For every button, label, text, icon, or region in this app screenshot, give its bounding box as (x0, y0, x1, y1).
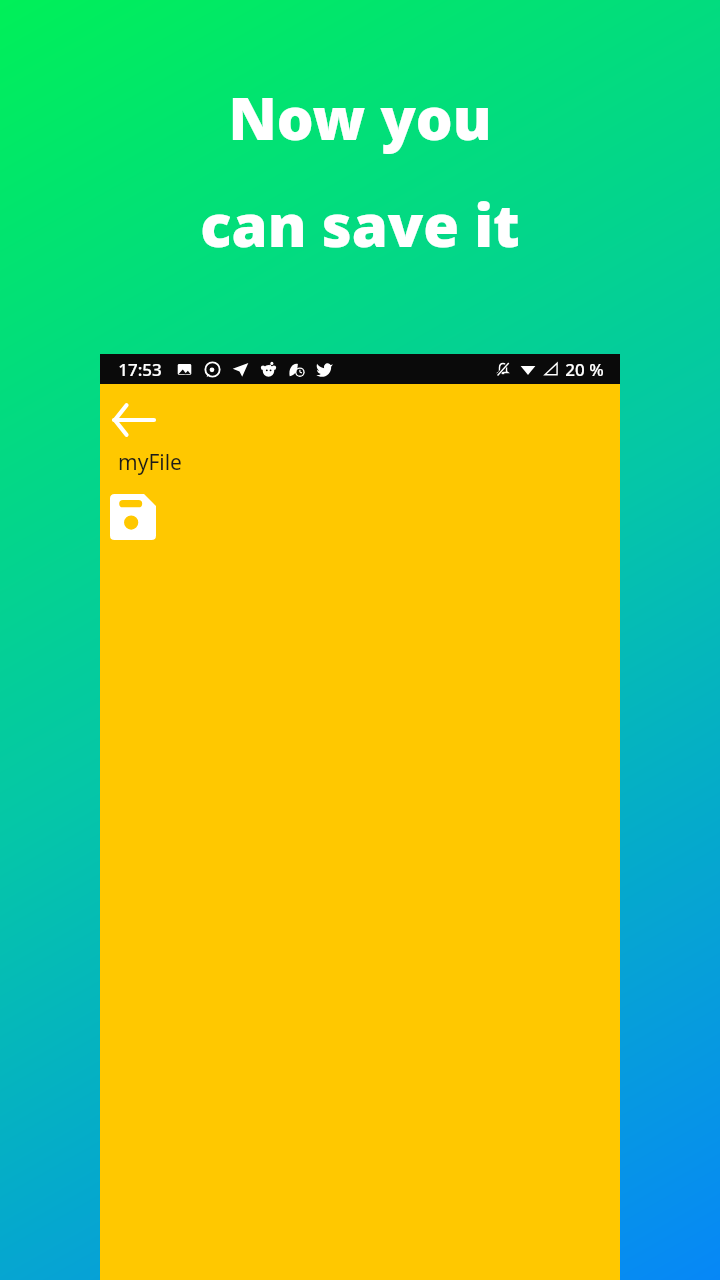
staticText: myFile (118, 448, 182, 477)
staticText: 17:53 (118, 358, 162, 381)
button[interactable]: myFile (100, 440, 620, 484)
button[interactable]: Back (106, 392, 162, 448)
button[interactable]: Save (106, 490, 160, 544)
staticText: Now you (228, 78, 492, 157)
staticText: can save it (200, 185, 520, 264)
staticText: 20 % (565, 358, 604, 381)
